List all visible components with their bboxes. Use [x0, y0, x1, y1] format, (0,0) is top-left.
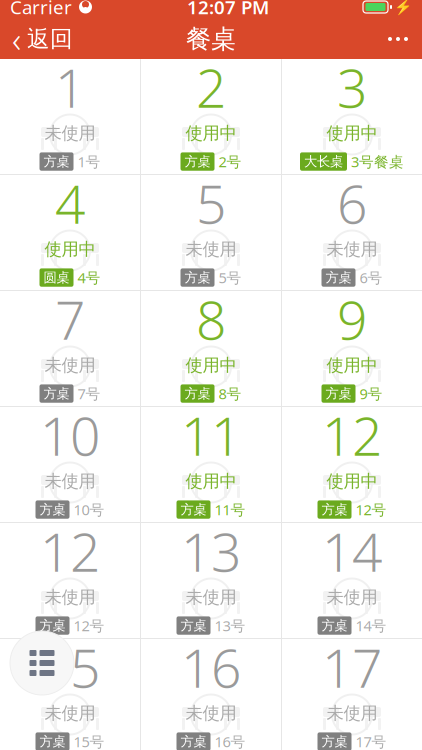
staticText: 使用中	[326, 354, 377, 376]
staticText: 1号	[77, 152, 100, 171]
button[interactable]: 4	[0, 175, 140, 290]
staticText: 未使用	[44, 586, 95, 608]
staticText: 餐桌	[186, 23, 236, 54]
staticText: 9号	[359, 384, 382, 403]
button[interactable]: 12	[0, 523, 140, 638]
staticText: Carrier	[10, 0, 72, 19]
staticText: 使用中	[326, 470, 377, 492]
staticText: 未使用	[44, 702, 95, 724]
staticText: 11号	[214, 500, 245, 519]
staticText: 4号	[77, 268, 100, 287]
button[interactable]: More options	[374, 19, 422, 59]
button[interactable]: 12	[282, 407, 422, 522]
staticText: 10	[40, 400, 100, 470]
button[interactable]: 1	[0, 59, 140, 174]
staticText: 未使用	[44, 354, 95, 376]
staticText: 15号	[73, 732, 104, 750]
staticText: 未使用	[185, 238, 236, 260]
staticText: 8号	[218, 384, 241, 403]
staticText: 方桌	[321, 733, 347, 750]
staticText: 使用中	[44, 238, 95, 260]
staticText: 16号	[214, 732, 245, 750]
staticText: ⚡	[394, 0, 412, 15]
staticText: 方桌	[180, 617, 206, 634]
staticText: 未使用	[185, 702, 236, 724]
staticText: 使用中	[185, 470, 236, 492]
staticText: 12号	[73, 616, 104, 635]
staticText: 5	[196, 168, 226, 238]
staticText: 13号	[214, 616, 245, 635]
staticText: 2号	[218, 152, 241, 171]
staticText: ‹	[12, 16, 21, 62]
staticText: 12:07 PM	[187, 0, 269, 19]
staticText: 17号	[355, 732, 386, 750]
staticText: 方桌	[43, 385, 69, 402]
staticText: 3号餐桌	[351, 152, 404, 171]
staticText: 12号	[355, 500, 386, 519]
button[interactable]: 14	[282, 523, 422, 638]
staticText: 使用中	[185, 122, 236, 144]
staticText: 9	[337, 284, 367, 354]
staticText: 使用中	[185, 354, 236, 376]
staticText: 6号	[359, 268, 382, 287]
staticText: 方桌	[184, 153, 210, 170]
button[interactable]: 9	[282, 291, 422, 406]
staticText: 使用中	[326, 122, 377, 144]
staticText: 方桌	[39, 501, 65, 518]
staticText: 方桌	[39, 733, 65, 750]
button[interactable]: 2	[141, 59, 281, 174]
button[interactable]: 8	[141, 291, 281, 406]
staticText: 1	[55, 52, 85, 122]
staticText: 圆桌	[43, 269, 69, 286]
button[interactable]: 6	[282, 175, 422, 290]
staticText: 返回	[27, 25, 73, 53]
staticText: 方桌	[184, 385, 210, 402]
button[interactable]: 10	[0, 407, 140, 522]
staticText: 5号	[218, 268, 241, 287]
button[interactable]: 11	[141, 407, 281, 522]
staticText: 10号	[73, 500, 104, 519]
button[interactable]: ‹	[0, 19, 85, 59]
staticText: 未使用	[326, 586, 377, 608]
staticText: 方桌	[184, 269, 210, 286]
staticText: 6	[337, 168, 367, 238]
button[interactable]: 17	[282, 639, 422, 750]
staticText: 11	[181, 400, 241, 470]
staticText: 13	[181, 516, 241, 586]
staticText: 17	[322, 632, 382, 702]
staticText: 8	[196, 284, 226, 354]
staticText: 方桌	[39, 617, 65, 634]
staticText: 14号	[355, 616, 386, 635]
staticText: 方桌	[321, 617, 347, 634]
staticText: 7	[55, 284, 85, 354]
staticText: 7号	[77, 384, 100, 403]
staticText: 14	[322, 516, 382, 586]
button[interactable]: 3	[282, 59, 422, 174]
staticText: 15	[40, 632, 100, 702]
staticText: 方桌	[325, 385, 351, 402]
staticText: 未使用	[44, 470, 95, 492]
staticText: 16	[181, 632, 241, 702]
button[interactable]: 15	[0, 639, 140, 750]
staticText: 方桌	[321, 501, 347, 518]
staticText: 12	[40, 516, 100, 586]
button[interactable]: 5	[141, 175, 281, 290]
staticText: 未使用	[185, 586, 236, 608]
staticText: 方桌	[180, 501, 206, 518]
button[interactable]: 7	[0, 291, 140, 406]
button[interactable]: 13	[141, 523, 281, 638]
staticText: 3	[337, 52, 367, 122]
staticText: 大长桌	[304, 153, 343, 170]
staticText: 4	[55, 168, 85, 238]
button[interactable]: 16	[141, 639, 281, 750]
staticText: 方桌	[180, 733, 206, 750]
staticText: 未使用	[326, 702, 377, 724]
staticText: 12	[322, 400, 382, 470]
staticText: 未使用	[44, 122, 95, 144]
staticText: 未使用	[326, 238, 377, 260]
button[interactable]: List view	[10, 631, 74, 695]
staticText: 方桌	[325, 269, 351, 286]
staticText: 方桌	[43, 153, 69, 170]
staticText: 2	[196, 52, 226, 122]
